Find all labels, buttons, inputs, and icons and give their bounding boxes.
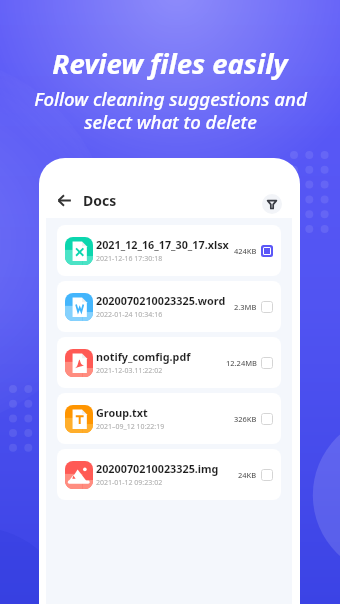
button[interactable]: Select bbox=[261, 357, 273, 369]
staticText: 2021_12_16_17_30_17.xlsx bbox=[96, 237, 229, 252]
staticText: 2.3MB bbox=[234, 302, 257, 312]
button[interactable]: Filter bbox=[262, 194, 282, 214]
staticText: Follow cleaning suggestions and select w… bbox=[34, 86, 307, 135]
staticText: 2021-01-12 09:23:02 bbox=[96, 478, 163, 488]
staticText: 2021–09_12 10:22:19 bbox=[96, 422, 165, 432]
staticText: notify_comfig.pdf bbox=[96, 349, 191, 364]
button[interactable]: notify_comfig.pdf bbox=[57, 337, 281, 388]
button[interactable]: 2020070210023325.word bbox=[57, 281, 281, 332]
staticText: 2021-12-03.11:22:02 bbox=[96, 366, 163, 376]
staticText: Group.txt bbox=[96, 405, 148, 420]
staticText: Docs bbox=[83, 191, 117, 210]
button[interactable]: Select bbox=[261, 413, 273, 425]
button[interactable]: Group.txt bbox=[57, 393, 281, 444]
staticText: 2022-01-24 10:34:16 bbox=[96, 310, 163, 320]
staticText: 424KB bbox=[234, 246, 257, 256]
button[interactable]: 2021_12_16_17_30_17.xlsx bbox=[57, 225, 281, 276]
staticText: 24KB bbox=[238, 470, 257, 480]
staticText: 326KB bbox=[234, 414, 257, 424]
staticText: 2020070210023325.word bbox=[96, 293, 226, 308]
button[interactable]: Select bbox=[261, 469, 273, 481]
staticText: 2021-12-16 17:30:18 bbox=[96, 254, 163, 264]
button[interactable]: Select bbox=[261, 245, 273, 257]
staticText: Review files easily bbox=[52, 45, 288, 82]
staticText: 12.24MB bbox=[226, 358, 257, 368]
button[interactable]: 2020070210023325.img bbox=[57, 449, 281, 500]
button[interactable]: Back bbox=[53, 189, 75, 211]
button[interactable]: Select bbox=[261, 301, 273, 313]
staticText: 2020070210023325.img bbox=[96, 461, 219, 476]
